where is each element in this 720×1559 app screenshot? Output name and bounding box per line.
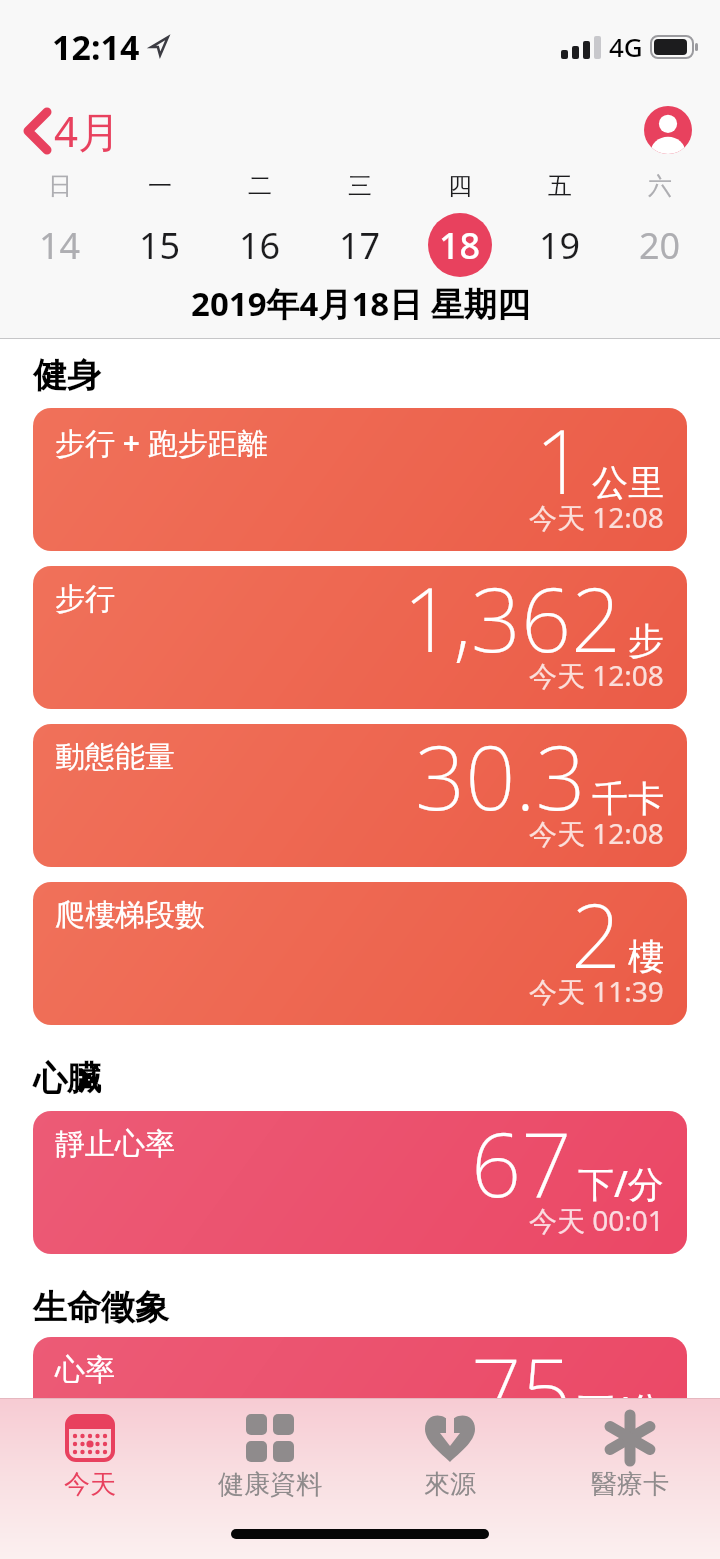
staticText: 1	[535, 408, 586, 520]
staticText: 健身	[33, 354, 101, 397]
button[interactable]	[644, 106, 692, 154]
staticText: 生命徵象	[33, 1286, 169, 1329]
staticText: 五	[548, 171, 572, 199]
button[interactable]: 20	[610, 212, 710, 278]
staticText: 樓	[628, 934, 664, 979]
staticText: 心率	[55, 1351, 115, 1389]
staticText: 六	[648, 171, 672, 199]
button[interactable]: 16	[210, 212, 310, 278]
staticText: 日	[48, 171, 72, 199]
staticText: 步行	[55, 580, 115, 618]
staticText: 下/分	[578, 1159, 664, 1208]
staticText: 一	[148, 171, 172, 199]
staticText: 步	[628, 618, 664, 663]
button[interactable]: 今天	[0, 1410, 180, 1501]
staticText: 19	[539, 221, 581, 270]
button[interactable]: 18	[410, 212, 510, 278]
staticText: 今天 12:08	[529, 814, 664, 852]
staticText: 二	[248, 171, 272, 199]
staticText: 12:14	[52, 24, 140, 68]
staticText: 來源	[424, 1468, 476, 1501]
staticText: 步行 + 跑步距離	[55, 422, 268, 463]
staticText: 20	[639, 221, 681, 270]
staticText: 4G	[609, 29, 643, 64]
button[interactable]: 動態能量	[33, 724, 687, 867]
staticText: 4月	[54, 102, 121, 159]
staticText: 17	[339, 221, 381, 270]
button[interactable]: 19	[510, 212, 610, 278]
staticText: 醫療卡	[591, 1468, 669, 1501]
staticText: 67	[471, 1111, 572, 1223]
staticText: 千卡	[592, 776, 664, 821]
button[interactable]: 14	[10, 212, 110, 278]
staticText: 14	[39, 221, 81, 270]
button[interactable]: 17	[310, 212, 410, 278]
staticText: 爬樓梯段數	[55, 896, 205, 934]
staticText: 健康資料	[218, 1468, 322, 1501]
button[interactable]: 醫療卡	[540, 1410, 720, 1501]
staticText: 今天 00:01	[529, 1201, 664, 1239]
staticText: 今天 12:08	[529, 498, 664, 536]
staticText: 今天	[64, 1468, 116, 1501]
button[interactable]: 來源	[360, 1410, 540, 1501]
staticText: 下/分	[578, 1385, 664, 1434]
button[interactable]: 心率	[33, 1337, 687, 1480]
button[interactable]: 步行	[33, 566, 687, 709]
staticText: 30.3	[415, 724, 586, 836]
staticText: 四	[448, 171, 472, 199]
staticText: 今天 12:08	[529, 656, 664, 694]
staticText: 18	[439, 221, 481, 270]
button[interactable]: 步行 + 跑步距離	[33, 408, 687, 551]
staticText: 靜止心率	[55, 1125, 175, 1163]
button[interactable]: 15	[110, 212, 210, 278]
staticText: 心臟	[33, 1057, 101, 1100]
staticText: 15	[139, 221, 181, 270]
button[interactable]: 4月	[24, 102, 121, 159]
staticText: 三	[348, 171, 372, 199]
button[interactable]: 靜止心率	[33, 1111, 687, 1254]
staticText: 公里	[592, 460, 664, 505]
staticText: 16	[239, 221, 281, 270]
staticText: 1,362	[403, 566, 622, 678]
staticText: 今天 11:39	[529, 972, 664, 1010]
staticText: 2	[571, 882, 622, 994]
staticText: 75	[471, 1337, 572, 1449]
staticText: 2019年4月18日 星期四	[191, 281, 530, 326]
button[interactable]: 健康資料	[180, 1410, 360, 1501]
staticText: 動態能量	[55, 738, 175, 776]
button[interactable]: 爬樓梯段數	[33, 882, 687, 1025]
